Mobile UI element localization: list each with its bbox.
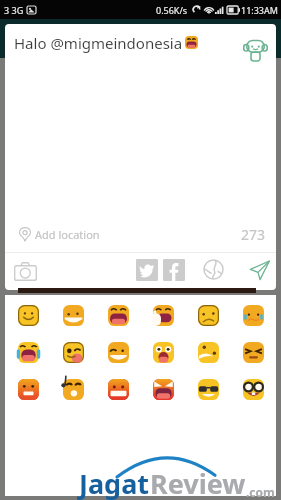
button[interactable]: Twitter [135,258,158,281]
staticText: 0.56K/s [156,4,188,16]
button[interactable]: Emoji 12 [231,334,276,371]
button[interactable]: Emoji 14 [51,371,96,408]
button[interactable]: Emoji 18 [231,371,276,408]
button[interactable]: Emoji 11 [186,334,231,371]
button[interactable]: Facebook [162,258,185,281]
button[interactable]: Stickers [239,33,271,65]
staticText: Add location [35,227,100,242]
button[interactable]: Public [200,256,226,282]
button[interactable]: Emoji 4 [141,297,186,334]
button[interactable]: Emoji 13 [5,371,51,408]
button[interactable]: Send [246,256,274,284]
button[interactable]: Emoji 7 [5,334,51,371]
staticText: Jagat [79,465,150,500]
staticText: .com [246,484,275,500]
button[interactable]: Emoji 6 [231,297,276,334]
button[interactable]: Emoji 3 [96,297,141,334]
button[interactable]: Emoji 8 [51,334,96,371]
button[interactable]: Emoji 15 [96,371,141,408]
button[interactable]: Add location [5,217,276,252]
button[interactable]: Camera [10,256,40,286]
staticText: 273 [241,225,266,244]
button[interactable]: Emoji 2 [51,297,96,334]
button[interactable]: Emoji 10 [141,334,186,371]
staticText: 3 3G [4,4,24,16]
button[interactable]: Emoji 1 [5,297,51,334]
button[interactable]: Emoji 16 [141,371,186,408]
button[interactable]: Emoji 5 [186,297,231,334]
staticText: 11:33AM [241,4,278,16]
button[interactable]: Emoji 9 [96,334,141,371]
staticText: Halo @migmeindonesia [14,33,183,53]
staticText: Review [150,465,246,500]
button[interactable]: Emoji 17 [186,371,231,408]
